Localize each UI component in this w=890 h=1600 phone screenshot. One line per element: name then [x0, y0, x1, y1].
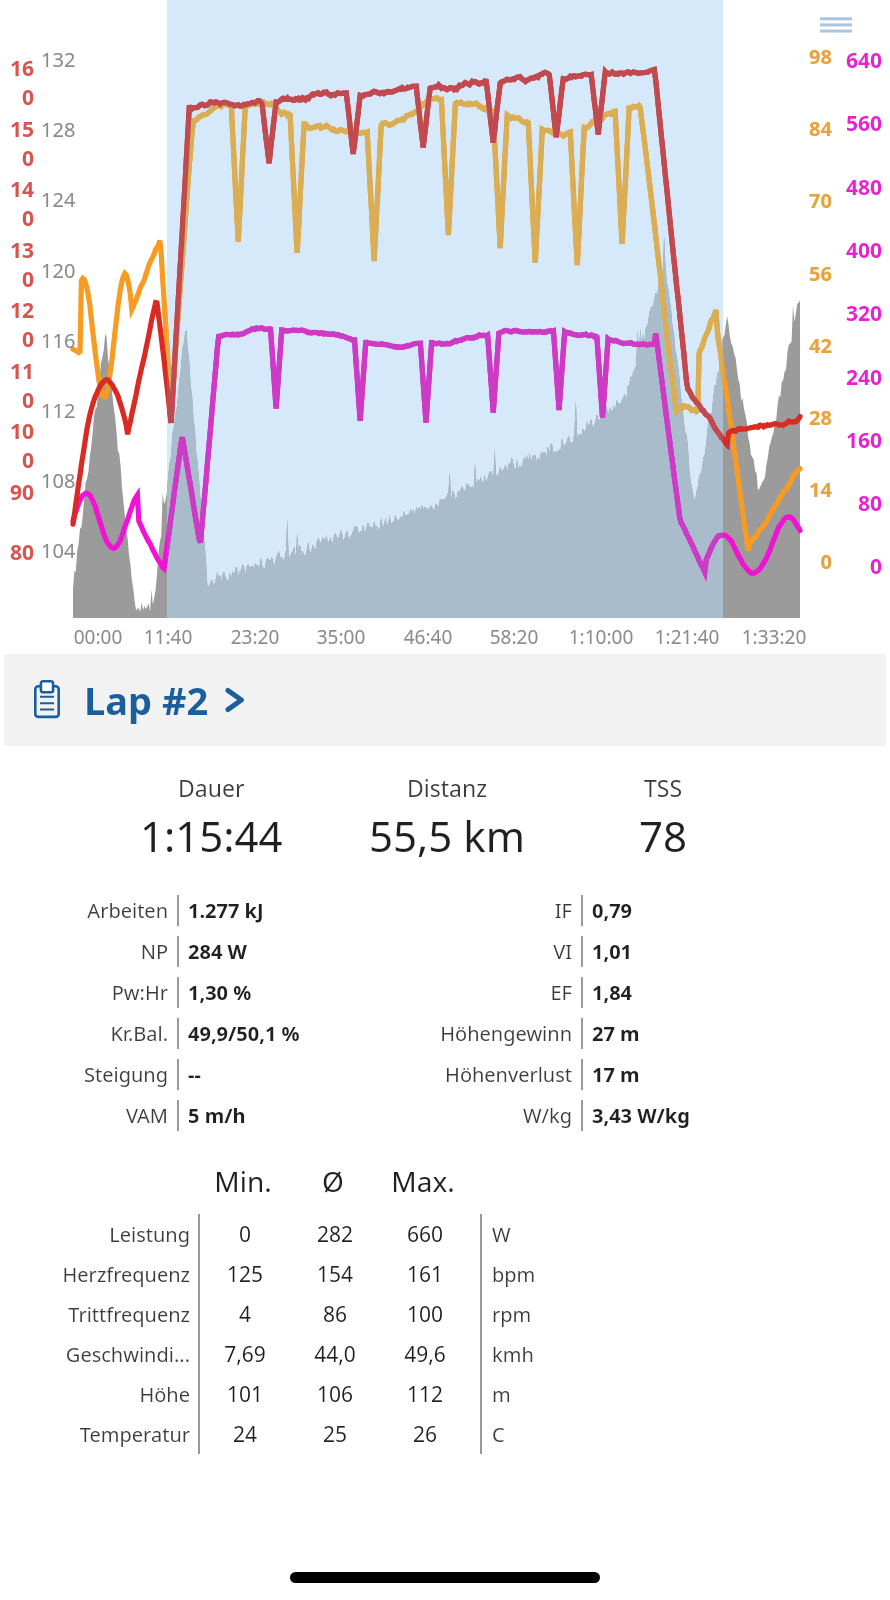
staticText: VAM [30, 1102, 168, 1129]
staticText: 132 [41, 46, 76, 73]
staticText: 35:00 [297, 624, 385, 650]
staticText: 3,43 W/kg [592, 1102, 742, 1129]
staticText: 160 [0, 426, 882, 455]
staticText: 1,84 [592, 979, 742, 1006]
staticText: 128 [41, 116, 76, 143]
staticText: IF [372, 897, 572, 924]
staticText: 70 [0, 187, 832, 214]
staticText: 120 [2, 296, 34, 354]
staticText: 44,0 [290, 1340, 380, 1369]
staticText: Dauer [178, 772, 245, 803]
staticText: Leistung [30, 1221, 190, 1248]
staticText: 1:33:20 [730, 624, 818, 650]
staticText: 27 m [592, 1020, 742, 1047]
staticText: 284 W [188, 938, 368, 965]
staticText: 108 [41, 467, 76, 494]
staticText: bpm [492, 1261, 562, 1288]
staticText: 26 [380, 1420, 470, 1449]
staticText: 25 [290, 1420, 380, 1449]
staticText: 282 [290, 1220, 380, 1249]
staticText: 78 [639, 807, 688, 864]
staticText: 7,69 [200, 1340, 290, 1369]
staticText: 124 [41, 186, 76, 213]
staticText: 100 [380, 1300, 470, 1329]
staticText: Lap #2 [84, 674, 209, 726]
staticText: Arbeiten [30, 897, 168, 924]
staticText: 00:00 [54, 624, 142, 650]
staticText: 110 [2, 357, 34, 415]
staticText: 0 [0, 552, 882, 581]
staticText: Max. [378, 1162, 468, 1200]
staticText: 58:20 [470, 624, 558, 650]
staticText: 100 [2, 417, 34, 475]
staticText: 1:15:44 [140, 807, 283, 864]
staticText: 150 [2, 115, 34, 173]
staticText: 17 m [592, 1061, 742, 1088]
staticText: 130 [2, 236, 34, 294]
staticText: 42 [0, 332, 832, 359]
staticText: Herzfrequenz [30, 1261, 190, 1288]
staticText: Trittfrequenz [30, 1301, 190, 1328]
staticText: 4 [200, 1300, 290, 1329]
staticText: 0,79 [592, 897, 742, 924]
staticText: 104 [41, 537, 76, 564]
staticText: rpm [492, 1301, 562, 1328]
staticText: 56 [0, 260, 832, 287]
staticText: 0 [200, 1220, 290, 1249]
staticText: 28 [0, 404, 832, 431]
staticText: 84 [0, 115, 832, 142]
staticText: 560 [0, 109, 882, 138]
staticText: 1,01 [592, 938, 742, 965]
staticText: 160 [2, 54, 34, 112]
staticText: 86 [290, 1300, 380, 1329]
staticText: Höhengewinn [372, 1020, 572, 1047]
staticText: 660 [380, 1220, 470, 1249]
staticText: 14 [0, 476, 832, 503]
staticText: 240 [0, 363, 882, 392]
button[interactable]: Lap #2 [4, 654, 886, 746]
staticText: VI [372, 938, 572, 965]
staticText: Ø [288, 1162, 378, 1200]
staticText: 24 [200, 1420, 290, 1449]
staticText: 320 [0, 299, 882, 328]
staticText: Geschwindi... [30, 1341, 190, 1368]
staticText: 98 [0, 43, 832, 70]
staticText: 49,6 [380, 1340, 470, 1369]
staticText: 11:40 [124, 624, 212, 650]
staticText: 1,30 % [188, 979, 368, 1006]
staticText: 101 [200, 1380, 290, 1409]
staticText: 154 [290, 1260, 380, 1289]
staticText: 112 [380, 1380, 470, 1409]
staticText: -- [188, 1061, 368, 1088]
staticText: 23:20 [211, 624, 299, 650]
staticText: 112 [41, 397, 76, 424]
staticText: 480 [0, 173, 882, 202]
staticText: 1.277 kJ [188, 897, 368, 924]
staticText: W [492, 1221, 562, 1248]
staticText: C [492, 1421, 562, 1448]
staticText: 80 [2, 538, 34, 567]
staticText: 49,9/50,1 % [188, 1020, 368, 1047]
staticText: NP [30, 938, 168, 965]
staticText: 90 [2, 478, 34, 507]
staticText: 140 [2, 175, 34, 233]
staticText: 5 m/h [188, 1102, 368, 1129]
staticText: Kr.Bal. [30, 1020, 168, 1047]
staticText: 46:40 [384, 624, 472, 650]
staticText: W/kg [372, 1102, 572, 1129]
staticText: Höhe [30, 1381, 190, 1408]
staticText: kmh [492, 1341, 562, 1368]
staticText: 80 [0, 489, 882, 518]
staticText: 120 [41, 257, 76, 284]
staticText: m [492, 1381, 562, 1408]
staticText: 0 [0, 548, 832, 575]
staticText: 400 [0, 236, 882, 265]
staticText: Min. [198, 1162, 288, 1200]
staticText: 1:10:00 [557, 624, 645, 650]
staticText: 640 [0, 46, 882, 75]
staticText: 1:21:40 [643, 624, 731, 650]
staticText: Höhenverlust [372, 1061, 572, 1088]
button[interactable]: Menu [818, 8, 854, 44]
staticText: 125 [200, 1260, 290, 1289]
staticText: 55,5 km [369, 807, 525, 864]
